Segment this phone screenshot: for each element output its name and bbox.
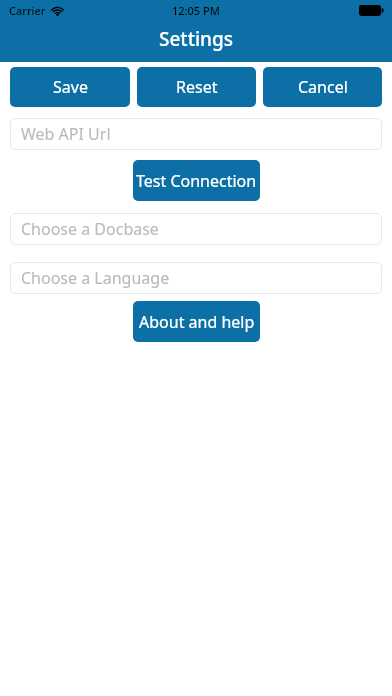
- staticText: Test Connection: [136, 170, 257, 192]
- button[interactable]: About and help: [133, 301, 260, 342]
- button[interactable]: Save: [10, 67, 130, 107]
- other: Wi-Fi: [51, 6, 64, 16]
- staticText: Web API Url: [21, 123, 111, 145]
- staticText: 12:05 PM: [172, 3, 220, 18]
- button[interactable]: Reset: [137, 67, 256, 107]
- staticText: Settings: [159, 26, 233, 52]
- staticText: Save: [53, 76, 88, 98]
- staticText: Choose a Docbase: [21, 218, 159, 240]
- button[interactable]: Choose a Language: [10, 262, 382, 294]
- staticText: Cancel: [298, 76, 348, 98]
- button[interactable]: Web API Url: [10, 118, 382, 150]
- staticText: Carrier: [9, 3, 46, 18]
- staticText: About and help: [139, 311, 255, 333]
- other: Battery full: [359, 5, 384, 16]
- button[interactable]: Cancel: [263, 67, 382, 107]
- button[interactable]: Choose a Docbase: [10, 213, 382, 245]
- staticText: Reset: [176, 76, 218, 98]
- staticText: Choose a Language: [21, 267, 170, 289]
- button[interactable]: Test Connection: [133, 160, 260, 201]
